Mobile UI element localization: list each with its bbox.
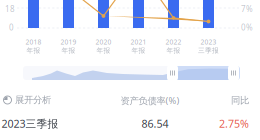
staticText: 年报 bbox=[96, 46, 110, 54]
staticText: 18 bbox=[5, 4, 15, 14]
button[interactable]: 展开分析 bbox=[3, 94, 51, 106]
staticText: 年报 bbox=[166, 46, 180, 54]
staticText: 2021 bbox=[130, 37, 146, 46]
staticText: 0 bbox=[9, 22, 14, 33]
staticText: 2023三季报 bbox=[1, 116, 58, 131]
staticText: 2019 bbox=[60, 37, 76, 46]
staticText: 年报 bbox=[61, 46, 75, 54]
staticText: 2018 bbox=[25, 37, 41, 46]
staticText: 同比 bbox=[231, 95, 249, 106]
staticText: 展开分析 bbox=[15, 94, 51, 106]
staticText: 年报 bbox=[26, 46, 40, 54]
staticText: 三季报 bbox=[198, 46, 219, 54]
staticText: 86.54 bbox=[141, 116, 168, 131]
staticText: 2020 bbox=[95, 37, 111, 46]
staticText: 资产负债率(%) bbox=[120, 94, 179, 107]
staticText: 年报 bbox=[131, 46, 145, 54]
staticText: 2022 bbox=[165, 37, 181, 46]
staticText: 7% bbox=[241, 4, 253, 14]
staticText: 2023 bbox=[200, 37, 216, 46]
staticText: 0% bbox=[241, 22, 253, 33]
staticText: 2.75% bbox=[219, 116, 249, 131]
